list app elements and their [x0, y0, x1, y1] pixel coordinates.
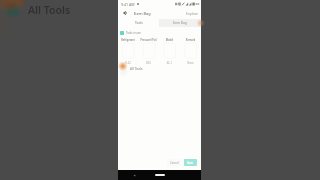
staticText: Model	[159, 38, 180, 41]
staticText: R-22	[118, 61, 138, 65]
staticText: Remark	[180, 38, 201, 41]
staticText: Tools in use	[126, 31, 141, 35]
staticText: 9:41 AM	[121, 2, 135, 7]
staticText: AC-1	[159, 61, 180, 65]
staticText: All Tools	[28, 3, 71, 17]
staticText: Explore	[186, 11, 198, 16]
staticText: Item Bag	[173, 21, 187, 25]
staticText: Tools	[135, 21, 143, 25]
staticText: 68.5	[138, 61, 159, 65]
staticText: Pressure (Psi)	[138, 38, 159, 41]
staticText: Save	[187, 161, 194, 165]
button[interactable]: Back	[118, 8, 131, 18]
staticText: All Tools	[130, 67, 143, 71]
staticText: Cancel	[170, 161, 179, 165]
button[interactable]: Tools	[118, 19, 159, 27]
button[interactable]: Back	[133, 174, 136, 177]
staticText: Refrigerant Name	[118, 38, 138, 41]
button[interactable]: Save	[184, 159, 197, 166]
staticText: None	[180, 61, 201, 65]
button[interactable]: Cancel	[167, 159, 181, 166]
button[interactable]: Explore	[186, 11, 201, 16]
button[interactable]: Item Bag	[159, 19, 201, 27]
staticText: Item Bag	[134, 11, 151, 16]
